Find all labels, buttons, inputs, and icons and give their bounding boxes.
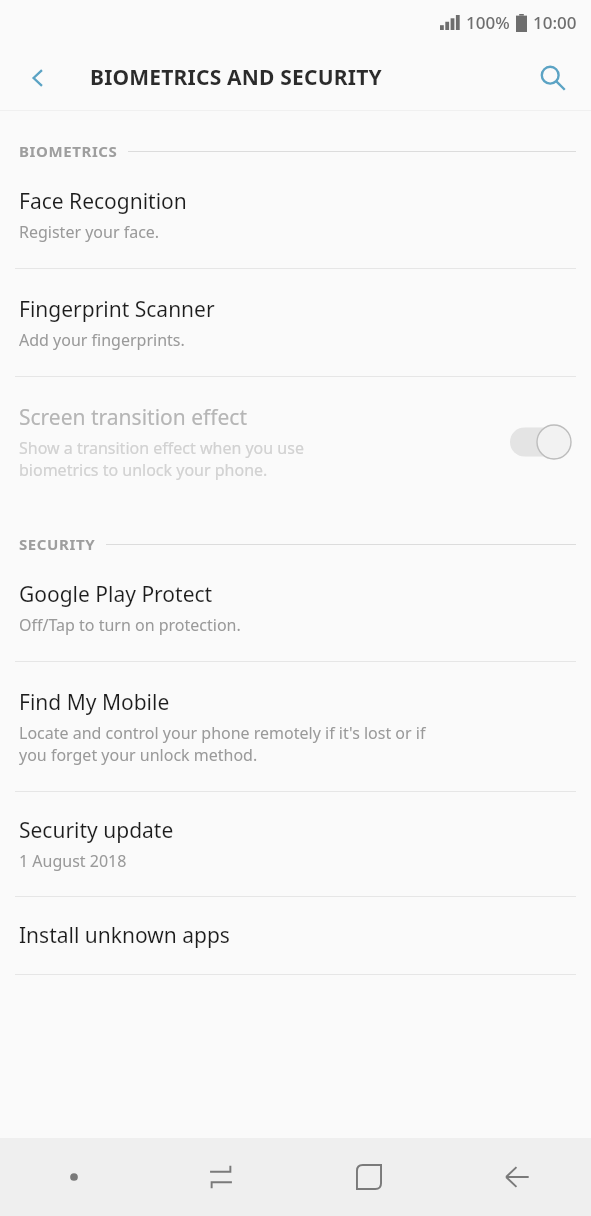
staticText: Face Recognition bbox=[19, 187, 187, 216]
staticText: 1 August 2018 bbox=[19, 850, 127, 872]
button[interactable]: Screen transition effect bbox=[0, 377, 591, 506]
staticText: 10:00 bbox=[533, 11, 577, 34]
staticText: SECURITY bbox=[19, 534, 96, 554]
button[interactable]: Fingerprint Scanner bbox=[0, 269, 591, 376]
staticText: 100% bbox=[466, 11, 510, 34]
staticText: Locate and control your phone remotely i… bbox=[19, 722, 426, 766]
staticText: Screen transition effect bbox=[19, 403, 247, 432]
other: Screen transition effect toggle bbox=[510, 424, 572, 460]
staticText: Google Play Protect bbox=[19, 580, 213, 609]
button[interactable]: Home bbox=[295, 1138, 443, 1216]
button[interactable]: Find My Mobile bbox=[0, 662, 591, 791]
staticText: Off/Tap to turn on protection. bbox=[19, 614, 241, 636]
button[interactable]: Keyboard indicator bbox=[0, 1138, 147, 1216]
button[interactable]: Search bbox=[527, 52, 579, 104]
staticText: Find My Mobile bbox=[19, 688, 170, 717]
button[interactable]: Face Recognition bbox=[0, 161, 591, 268]
button[interactable]: Back bbox=[12, 52, 64, 104]
staticText: Add your fingerprints. bbox=[19, 329, 185, 351]
staticText: Show a transition effect when you use bi… bbox=[19, 437, 304, 481]
staticText: Install unknown apps bbox=[19, 921, 230, 950]
button[interactable]: Install unknown apps bbox=[0, 897, 591, 974]
staticText: BIOMETRICS bbox=[19, 141, 118, 161]
staticText: Register your face. bbox=[19, 221, 160, 243]
staticText: BIOMETRICS AND SECURITY bbox=[90, 63, 382, 92]
button[interactable]: Recent apps bbox=[147, 1138, 295, 1216]
staticText: Fingerprint Scanner bbox=[19, 295, 215, 324]
button[interactable]: Google Play Protect bbox=[0, 554, 591, 661]
button[interactable]: Security update bbox=[0, 792, 591, 896]
button[interactable]: Back bbox=[443, 1138, 591, 1216]
staticText: Security update bbox=[19, 816, 174, 845]
